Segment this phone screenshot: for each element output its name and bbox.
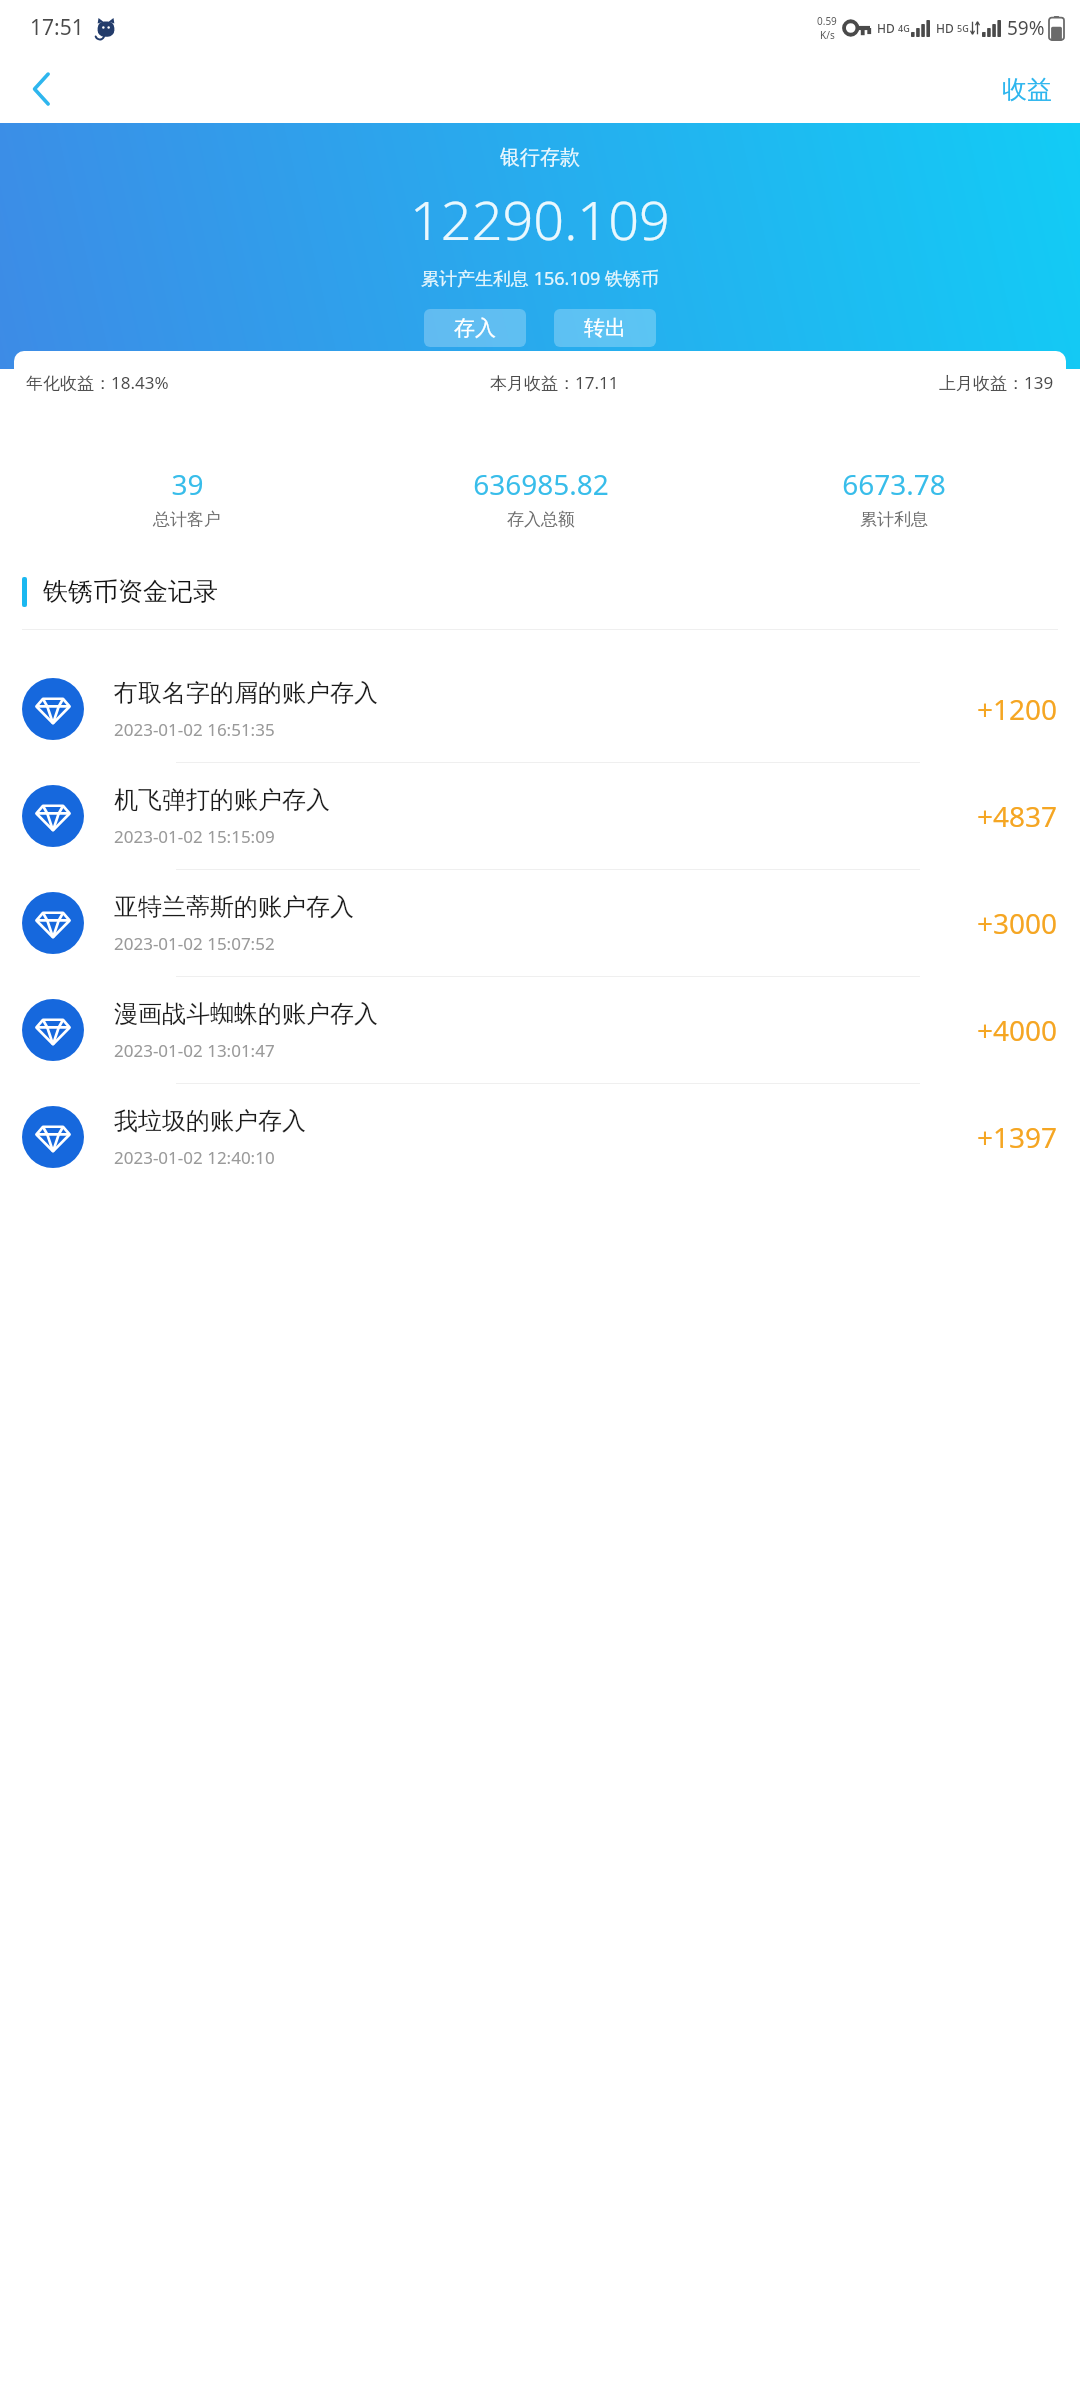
staticText: 本月收益：17.11	[490, 371, 619, 394]
staticText: 5G	[957, 22, 969, 34]
button[interactable]: 我垃圾的账户存入	[0, 1084, 1080, 1190]
staticText: 0.59	[817, 14, 837, 28]
button[interactable]: 年化收益：18.43%	[14, 351, 1066, 413]
staticText: 上月收益：139	[939, 371, 1054, 394]
staticText: 漫画战斗蜘蛛的账户存入	[114, 999, 378, 1029]
button[interactable]: 冇取名字的屑的账户存入	[0, 656, 1080, 763]
staticText: HD	[936, 20, 954, 36]
staticText: HD	[877, 20, 895, 36]
staticText: 2023-01-02 15:15:09	[114, 825, 275, 848]
button[interactable]: Back	[14, 61, 70, 117]
button[interactable]: 转出	[554, 309, 656, 347]
staticText: 59%	[1007, 15, 1045, 41]
staticText: 4G	[898, 22, 910, 34]
button[interactable]: 636985.82	[364, 465, 717, 530]
staticText: 39	[171, 465, 204, 503]
button[interactable]: 6673.78	[717, 465, 1070, 530]
staticText: 2023-01-02 13:01:47	[114, 1039, 275, 1062]
staticText: 累计利息	[860, 509, 928, 530]
staticText: 银行存款	[500, 145, 580, 170]
staticText: 亚特兰蒂斯的账户存入	[114, 892, 354, 922]
staticText: 铁锈币资金记录	[43, 576, 218, 607]
button[interactable]: 亚特兰蒂斯的账户存入	[0, 870, 1080, 977]
staticText: K/s	[820, 28, 835, 42]
staticText: 年化收益：18.43%	[26, 371, 169, 394]
staticText: 2023-01-02 12:40:10	[114, 1146, 275, 1169]
button[interactable]: 39	[10, 465, 364, 530]
staticText: 冇取名字的屑的账户存入	[114, 678, 378, 708]
staticText: +1397	[977, 1118, 1058, 1156]
staticText: 转出	[584, 315, 626, 341]
staticText: +4837	[977, 797, 1058, 835]
staticText: +3000	[977, 904, 1058, 942]
staticText: 我垃圾的账户存入	[114, 1106, 306, 1136]
button[interactable]: 漫画战斗蜘蛛的账户存入	[0, 977, 1080, 1084]
staticText: 收益	[1002, 74, 1052, 105]
staticText: 2023-01-02 16:51:35	[114, 718, 275, 741]
button[interactable]: 机飞弹打的账户存入	[0, 763, 1080, 870]
staticText: 总计客户	[153, 509, 221, 530]
staticText: 机飞弹打的账户存入	[114, 785, 330, 815]
staticText: 存入总额	[507, 509, 575, 530]
staticText: 6673.78	[842, 465, 946, 503]
button[interactable]: 存入	[424, 309, 526, 347]
staticText: +4000	[977, 1011, 1058, 1049]
staticText: 累计产生利息 156.109 铁锈币	[421, 266, 659, 291]
staticText: 存入	[454, 315, 496, 341]
button[interactable]: 收益	[996, 68, 1058, 111]
staticText: 2023-01-02 15:07:52	[114, 932, 275, 955]
staticText: 636985.82	[473, 465, 609, 503]
staticText: 12290.109	[410, 182, 670, 256]
staticText: 17:51	[30, 13, 84, 42]
staticText: +1200	[977, 690, 1058, 728]
